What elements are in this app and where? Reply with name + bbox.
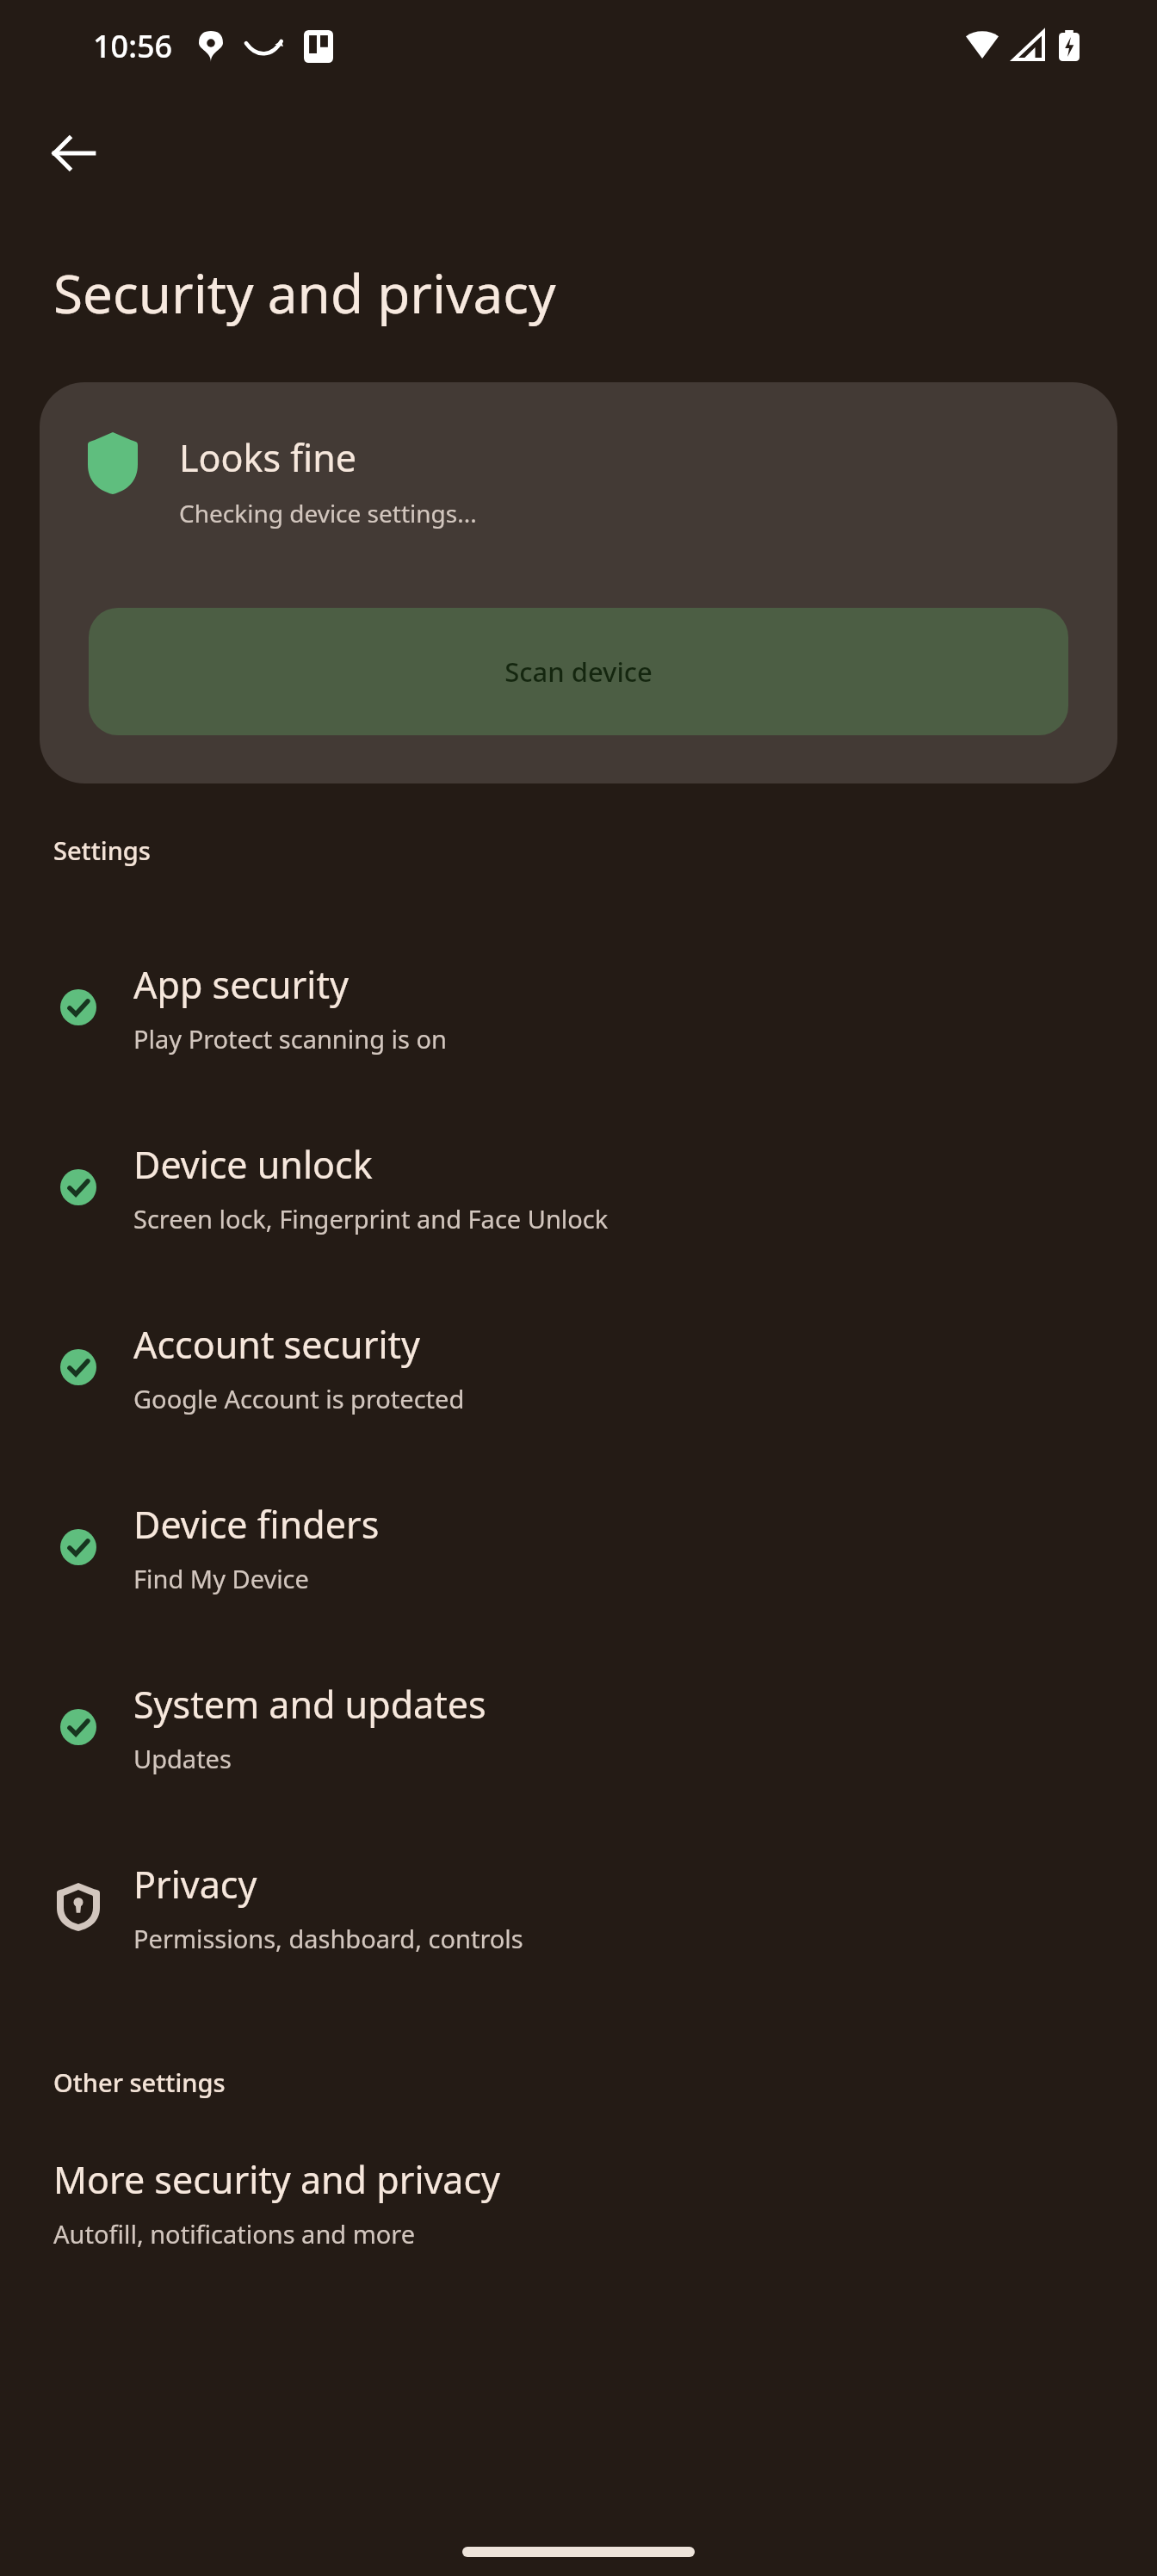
staticText: Scan device <box>504 653 653 690</box>
staticText: Other settings <box>53 2065 226 2099</box>
staticText: System and updates <box>133 1679 486 1730</box>
staticText: Privacy <box>133 1859 257 1910</box>
staticText: Google Account is protected <box>133 1382 465 1415</box>
button[interactable]: Device finders <box>0 1457 1157 1637</box>
staticText: Autofill, notifications and more <box>53 2217 416 2251</box>
staticText: Security and privacy <box>53 257 556 329</box>
button[interactable]: Account security <box>0 1277 1157 1457</box>
staticText: Settings <box>53 833 151 867</box>
staticText: More security and privacy <box>53 2154 501 2205</box>
button[interactable]: Scan device <box>89 608 1068 735</box>
button[interactable]: System and updates <box>0 1637 1157 1817</box>
staticText: Device finders <box>133 1499 380 1550</box>
staticText: 10:56 <box>93 25 173 67</box>
staticText: Play Protect scanning is on <box>133 1022 447 1056</box>
staticText: Permissions, dashboard, controls <box>133 1922 523 1955</box>
staticText: Screen lock, Fingerprint and Face Unlock <box>133 1202 609 1235</box>
staticText: App security <box>133 959 349 1010</box>
button[interactable]: App security <box>0 917 1157 1097</box>
button[interactable]: More security and privacy <box>0 2149 1157 2256</box>
staticText: Device unlock <box>133 1139 373 1190</box>
button[interactable]: Device unlock <box>0 1097 1157 1277</box>
staticText: Find My Device <box>133 1562 309 1595</box>
staticText: Account security <box>133 1319 420 1370</box>
staticText: Checking device settings... <box>179 497 477 529</box>
button[interactable]: Back <box>31 110 117 196</box>
button[interactable]: Privacy <box>0 1817 1157 1997</box>
staticText: Looks fine <box>179 432 357 483</box>
staticText: Updates <box>133 1742 232 1775</box>
